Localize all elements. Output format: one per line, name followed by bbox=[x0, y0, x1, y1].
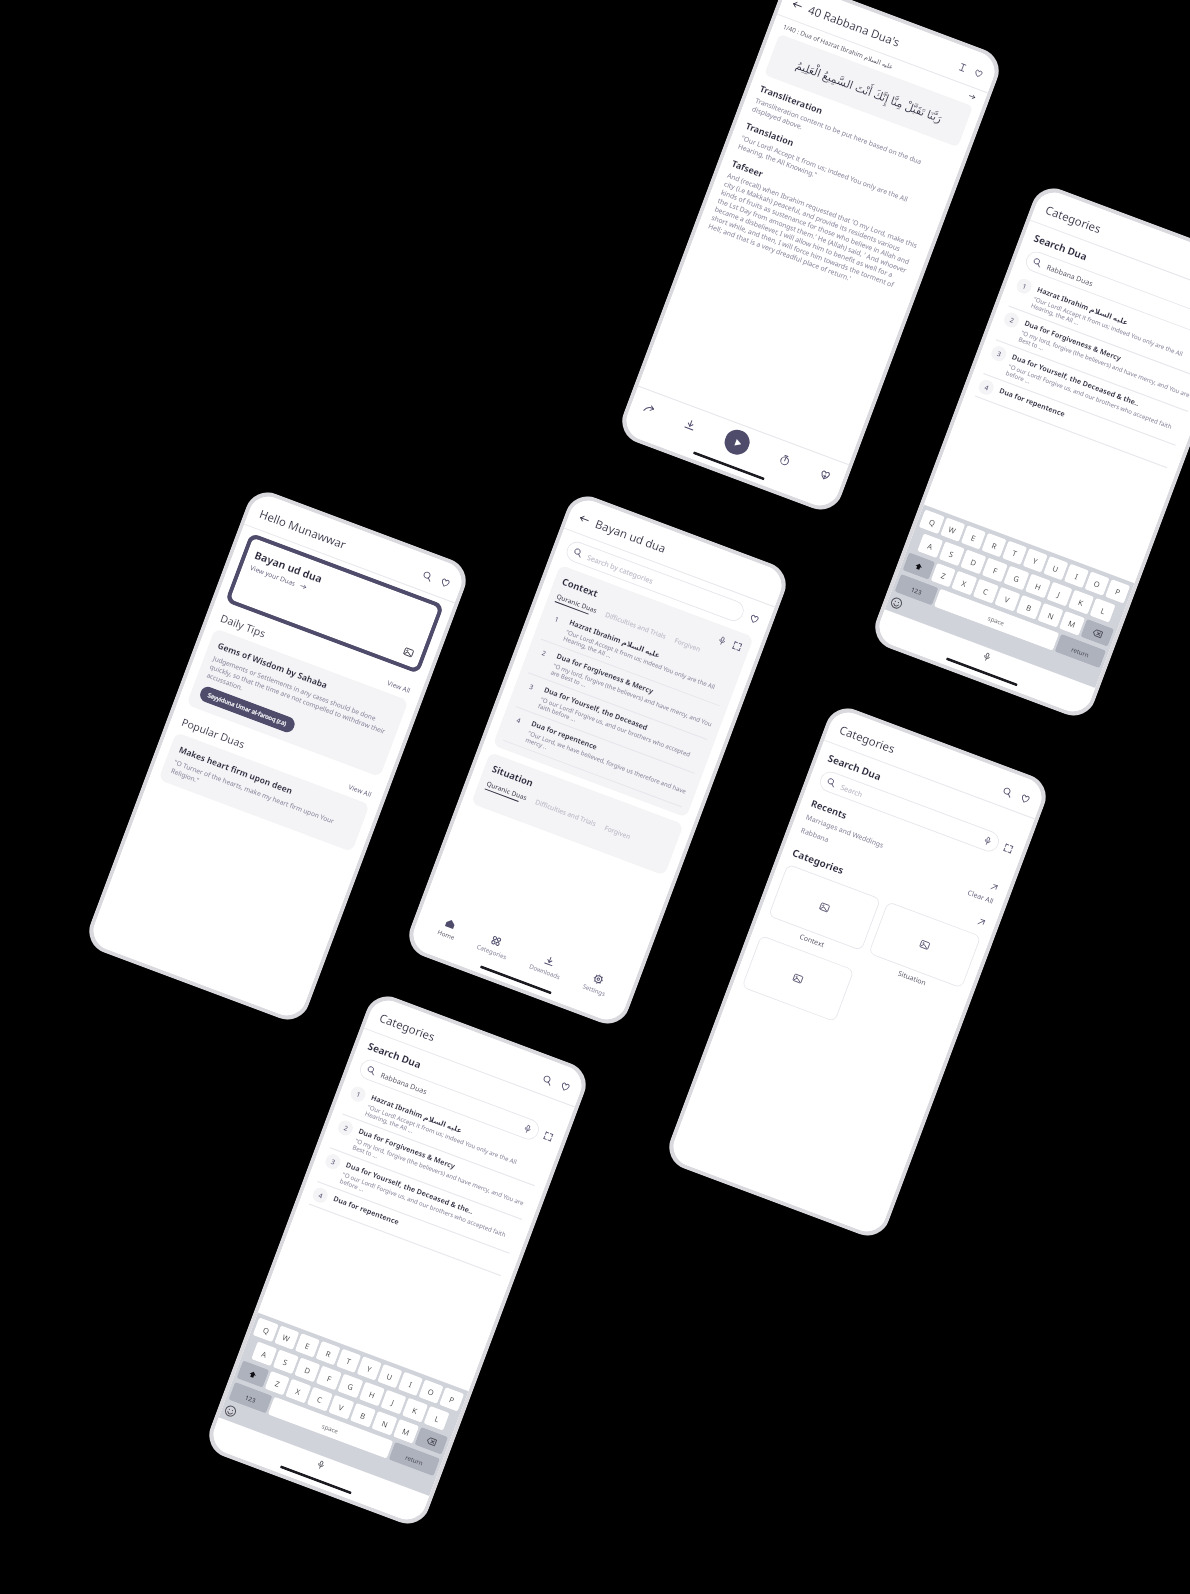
button[interactable]: Shift bbox=[902, 552, 935, 580]
button[interactable]: Makes heart firm upon deen bbox=[158, 732, 370, 852]
button[interactable]: U bbox=[1043, 556, 1068, 581]
button[interactable]: View All bbox=[347, 782, 373, 799]
button[interactable]: Q bbox=[253, 1317, 279, 1342]
button[interactable]: Timer bbox=[778, 453, 792, 467]
button[interactable]: Voice input bbox=[315, 1459, 327, 1470]
button[interactable]: P bbox=[1105, 579, 1130, 604]
button[interactable]: O bbox=[1084, 571, 1110, 596]
button[interactable]: R bbox=[315, 1341, 341, 1365]
button[interactable]: Rabbana Duas bbox=[1023, 248, 1190, 335]
button[interactable]: رَبَّنَا تَقَبَّلْ مِنَّا إِنَّكَ أَنْتَ… bbox=[764, 34, 973, 147]
button[interactable]: 1 bbox=[1008, 273, 1190, 378]
button[interactable]: H bbox=[359, 1381, 385, 1407]
button[interactable]: W bbox=[940, 517, 965, 542]
button[interactable]: Search bbox=[817, 768, 1002, 855]
button[interactable]: View All bbox=[386, 678, 412, 695]
button[interactable]: Favourites bbox=[1019, 792, 1032, 805]
button[interactable]: B bbox=[1016, 595, 1042, 620]
button[interactable]: 1 bbox=[342, 1081, 547, 1186]
button[interactable]: Quranic Duas bbox=[555, 592, 599, 617]
button[interactable]: C bbox=[307, 1386, 333, 1412]
button[interactable]: Z bbox=[264, 1371, 290, 1396]
button[interactable]: Share bbox=[642, 402, 656, 416]
button[interactable]: Clear All bbox=[966, 888, 995, 907]
button[interactable]: Y bbox=[1022, 548, 1048, 573]
button[interactable]: L bbox=[423, 1406, 450, 1431]
button[interactable]: return bbox=[1055, 634, 1106, 668]
button[interactable]: Search bbox=[541, 1074, 554, 1087]
button[interactable]: 3 bbox=[515, 673, 707, 774]
button[interactable]: Situation bbox=[864, 901, 981, 1001]
button[interactable]: Z bbox=[930, 563, 956, 588]
button[interactable]: Expand categories bbox=[976, 917, 986, 927]
button[interactable]: O bbox=[418, 1379, 444, 1404]
button[interactable]: X bbox=[951, 570, 977, 596]
button[interactable]: Marriages and Weddings bbox=[804, 812, 1000, 894]
button[interactable]: Search bbox=[1001, 786, 1014, 799]
button[interactable]: 1 bbox=[541, 606, 732, 706]
button[interactable]: Quranic Duas bbox=[485, 779, 529, 804]
button[interactable]: Difficulties and Trials bbox=[604, 610, 668, 641]
button[interactable]: 3 bbox=[983, 340, 1188, 446]
button[interactable]: 3 bbox=[317, 1148, 522, 1254]
button[interactable]: Favourites bbox=[439, 576, 452, 589]
button[interactable]: Emoji bbox=[223, 1403, 238, 1419]
button[interactable]: T bbox=[1002, 540, 1027, 565]
button[interactable]: Scan bbox=[542, 1131, 554, 1142]
button[interactable] bbox=[741, 935, 855, 1022]
button[interactable]: Y bbox=[356, 1356, 382, 1381]
button[interactable]: 2 bbox=[528, 639, 719, 740]
button[interactable]: G bbox=[1003, 565, 1029, 591]
button[interactable]: Play bbox=[721, 426, 753, 458]
button[interactable]: Settings bbox=[576, 967, 617, 1001]
button[interactable]: L bbox=[1089, 598, 1116, 623]
button[interactable]: Shift bbox=[236, 1360, 269, 1388]
button[interactable]: return bbox=[389, 1442, 440, 1476]
button[interactable]: Add to favourites bbox=[818, 468, 832, 482]
button[interactable]: A bbox=[917, 533, 943, 558]
button[interactable]: S bbox=[273, 1349, 299, 1374]
button[interactable]: Voice input bbox=[981, 651, 993, 662]
button[interactable]: N bbox=[371, 1411, 398, 1436]
button[interactable]: Back bbox=[791, 0, 804, 12]
button[interactable]: R bbox=[981, 533, 1007, 557]
button[interactable]: T bbox=[336, 1348, 361, 1373]
button[interactable]: 123 bbox=[228, 1382, 272, 1414]
button[interactable]: K bbox=[1068, 590, 1094, 615]
button[interactable]: Downloads bbox=[523, 947, 572, 984]
button[interactable]: 4 bbox=[503, 707, 694, 807]
button[interactable]: M bbox=[393, 1419, 419, 1444]
button[interactable]: Next dua bbox=[967, 92, 976, 101]
button[interactable]: J bbox=[1046, 581, 1073, 607]
button[interactable]: B bbox=[350, 1403, 376, 1428]
button[interactable]: A bbox=[251, 1341, 277, 1366]
button[interactable]: Search by categories bbox=[563, 539, 747, 624]
button[interactable]: J bbox=[380, 1389, 407, 1415]
button[interactable]: space bbox=[934, 588, 1059, 651]
button[interactable]: Expand bbox=[731, 640, 743, 652]
button[interactable]: Backspace bbox=[414, 1427, 448, 1455]
button[interactable]: C bbox=[973, 578, 999, 604]
button[interactable]: Text size bbox=[957, 62, 968, 73]
button[interactable]: Categories bbox=[471, 927, 518, 964]
button[interactable]: Download bbox=[683, 418, 697, 432]
button[interactable]: N bbox=[1037, 603, 1064, 628]
button[interactable]: H bbox=[1025, 573, 1051, 599]
button[interactable]: Context bbox=[763, 864, 881, 963]
button[interactable]: E bbox=[961, 525, 986, 550]
button[interactable]: 4 bbox=[309, 1182, 509, 1276]
button[interactable]: 2 bbox=[330, 1114, 534, 1220]
button[interactable]: Bayan ud dua bbox=[230, 538, 439, 669]
button[interactable]: Favourite bbox=[973, 68, 984, 79]
button[interactable]: P bbox=[439, 1387, 464, 1412]
button[interactable]: Search bbox=[421, 570, 434, 583]
button[interactable]: F bbox=[316, 1365, 342, 1391]
button[interactable]: X bbox=[285, 1378, 311, 1404]
button[interactable]: F bbox=[982, 557, 1008, 583]
button[interactable]: 123 bbox=[894, 574, 938, 606]
button[interactable]: Scan bbox=[1002, 843, 1014, 854]
button[interactable]: Forgiven bbox=[673, 636, 702, 654]
button[interactable]: Backspace bbox=[1080, 619, 1114, 647]
button[interactable]: D bbox=[294, 1357, 320, 1382]
button[interactable]: I bbox=[1064, 563, 1089, 588]
